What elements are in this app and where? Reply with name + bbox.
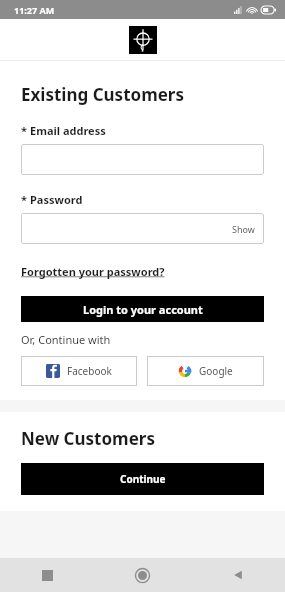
- staticText: Email address: [30, 123, 106, 138]
- staticText: *: [21, 123, 30, 138]
- button[interactable]: Facebook: [21, 356, 137, 386]
- staticText: *: [21, 192, 30, 207]
- staticText: 11:27 AM: [14, 4, 55, 16]
- staticText: Show: [232, 223, 255, 235]
- staticText: Login to your account: [83, 302, 203, 317]
- staticText: Google: [199, 364, 233, 378]
- button[interactable]: [21, 144, 264, 175]
- button[interactable]: Google: [147, 356, 264, 386]
- button[interactable]: Show: [232, 223, 255, 235]
- staticText: Password: [30, 192, 83, 207]
- button[interactable]: Login to your account: [21, 296, 264, 322]
- staticText: Or, Continue with: [21, 332, 111, 347]
- button[interactable]: Continue: [21, 463, 264, 495]
- button[interactable]: Home: [95, 558, 190, 592]
- staticText: Forgotten your password?: [21, 264, 165, 279]
- staticText: Continue: [120, 472, 166, 486]
- button[interactable]: Recents: [0, 558, 95, 592]
- button[interactable]: Forgotten your password?: [21, 264, 165, 279]
- button[interactable]: Back: [190, 558, 285, 592]
- staticText: Existing Customers: [21, 83, 184, 106]
- button[interactable]: Show: [21, 213, 264, 244]
- staticText: Facebook: [67, 364, 112, 378]
- staticText: New Customers: [21, 427, 155, 450]
